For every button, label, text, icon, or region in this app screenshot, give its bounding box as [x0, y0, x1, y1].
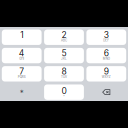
- button[interactable]: 4: [2, 48, 42, 63]
- staticText: 7: [19, 66, 24, 77]
- staticText: 2: [61, 30, 66, 40]
- staticText: GHI: [19, 57, 24, 60]
- staticText: WXYZ: [102, 75, 111, 79]
- staticText: *: [20, 88, 24, 98]
- staticText: 5: [61, 48, 66, 58]
- button[interactable]: 0: [44, 84, 84, 100]
- staticText: 4: [19, 48, 25, 58]
- staticText: 1: [20, 30, 23, 40]
- button[interactable]: Star: [2, 84, 42, 100]
- button[interactable]: 2: [44, 29, 84, 45]
- staticText: +: [63, 94, 65, 97]
- button[interactable]: 7: [2, 66, 42, 82]
- staticText: 8: [61, 66, 66, 77]
- staticText: 6: [104, 48, 109, 58]
- staticText: JKL: [61, 57, 67, 60]
- button[interactable]: 9: [86, 66, 126, 82]
- staticText: MNO: [103, 57, 110, 60]
- button[interactable]: 3: [86, 29, 126, 45]
- staticText: 3: [104, 30, 109, 40]
- staticText: ABC: [61, 39, 67, 42]
- button[interactable]: 5: [44, 48, 84, 63]
- staticText: 9: [104, 66, 109, 77]
- staticText: 0: [61, 86, 66, 96]
- button[interactable]: 8: [44, 66, 84, 82]
- button[interactable]: 6: [86, 48, 126, 63]
- button[interactable]: 1: [2, 29, 42, 45]
- button[interactable]: Delete: [86, 84, 126, 100]
- staticText: PQRS: [18, 75, 26, 79]
- staticText: DEF: [103, 39, 109, 42]
- staticText: TUV: [61, 75, 67, 79]
